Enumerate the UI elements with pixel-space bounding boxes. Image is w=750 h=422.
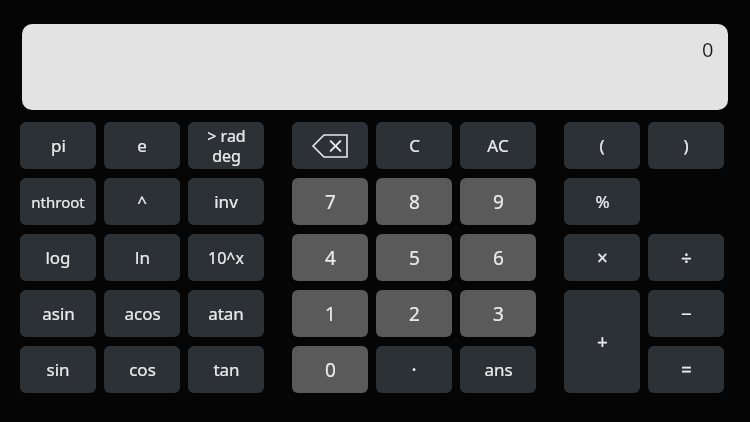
button[interactable]: nthroot [20, 178, 96, 225]
staticText: − [681, 301, 692, 327]
button[interactable]: ( [564, 122, 640, 169]
staticText: nthroot [31, 192, 85, 212]
button[interactable]: × [564, 234, 640, 281]
button[interactable]: ^ [104, 178, 180, 225]
staticText: ÷ [681, 245, 692, 271]
button[interactable]: asin [20, 290, 96, 337]
staticText: C [409, 134, 420, 157]
staticText: cos [129, 358, 156, 381]
staticText: ) [683, 134, 689, 157]
button[interactable]: 1 [292, 290, 368, 337]
staticText: ln [135, 246, 150, 269]
button[interactable]: pi [20, 122, 96, 169]
staticText: 7 [325, 189, 336, 215]
staticText: 9 [493, 189, 504, 215]
button[interactable]: sin [20, 346, 96, 393]
button[interactable]: 8 [376, 178, 452, 225]
button[interactable]: ans [460, 346, 536, 393]
button[interactable]: 4 [292, 234, 368, 281]
staticText: pi [51, 134, 66, 157]
button[interactable]: 0 [22, 24, 728, 110]
button[interactable]: 2 [376, 290, 452, 337]
button[interactable]: 0 [292, 346, 368, 393]
staticText: 4 [325, 245, 336, 271]
staticText: e [137, 134, 147, 157]
button[interactable]: ln [104, 234, 180, 281]
button[interactable]: 10^x [188, 234, 264, 281]
staticText: sin [46, 358, 70, 381]
button[interactable]: − [648, 290, 724, 337]
button[interactable]: % [564, 178, 640, 225]
button[interactable]: inv [188, 178, 264, 225]
button[interactable]: cos [104, 346, 180, 393]
staticText: · [411, 357, 417, 383]
button[interactable]: ) [648, 122, 724, 169]
button[interactable]: Backspace [292, 122, 368, 169]
staticText: 3 [493, 301, 504, 327]
button[interactable]: = [648, 346, 724, 393]
button[interactable]: 9 [460, 178, 536, 225]
staticText: 5 [409, 245, 420, 271]
staticText: 0 [702, 36, 714, 63]
staticText: 2 [409, 301, 420, 327]
staticText: > rad deg [207, 125, 246, 166]
button[interactable]: 6 [460, 234, 536, 281]
button[interactable]: · [376, 346, 452, 393]
staticText: = [681, 357, 692, 383]
staticText: tan [213, 358, 240, 381]
button[interactable]: e [104, 122, 180, 169]
button[interactable]: C [376, 122, 452, 169]
staticText: % [595, 190, 610, 213]
staticText: 0 [325, 357, 336, 383]
staticText: 8 [409, 189, 420, 215]
staticText: inv [214, 190, 238, 213]
staticText: × [597, 245, 608, 271]
button[interactable]: acos [104, 290, 180, 337]
staticText: asin [42, 302, 75, 325]
button[interactable]: + [564, 290, 640, 393]
button[interactable]: 7 [292, 178, 368, 225]
button[interactable]: AC [460, 122, 536, 169]
staticText: + [597, 329, 608, 355]
staticText: ( [599, 134, 605, 157]
staticText: log [45, 246, 71, 269]
staticText: acos [124, 302, 161, 325]
staticText: 6 [493, 245, 504, 271]
button[interactable]: 3 [460, 290, 536, 337]
button[interactable]: 5 [376, 234, 452, 281]
staticText: 10^x [208, 247, 244, 269]
button[interactable]: > rad deg [188, 122, 264, 169]
staticText: ^ [137, 190, 147, 213]
button[interactable]: log [20, 234, 96, 281]
staticText: atan [208, 302, 244, 325]
button[interactable]: atan [188, 290, 264, 337]
button[interactable]: ÷ [648, 234, 724, 281]
staticText: AC [487, 134, 509, 157]
staticText: 1 [325, 301, 336, 327]
button[interactable]: tan [188, 346, 264, 393]
staticText: ans [484, 358, 513, 381]
